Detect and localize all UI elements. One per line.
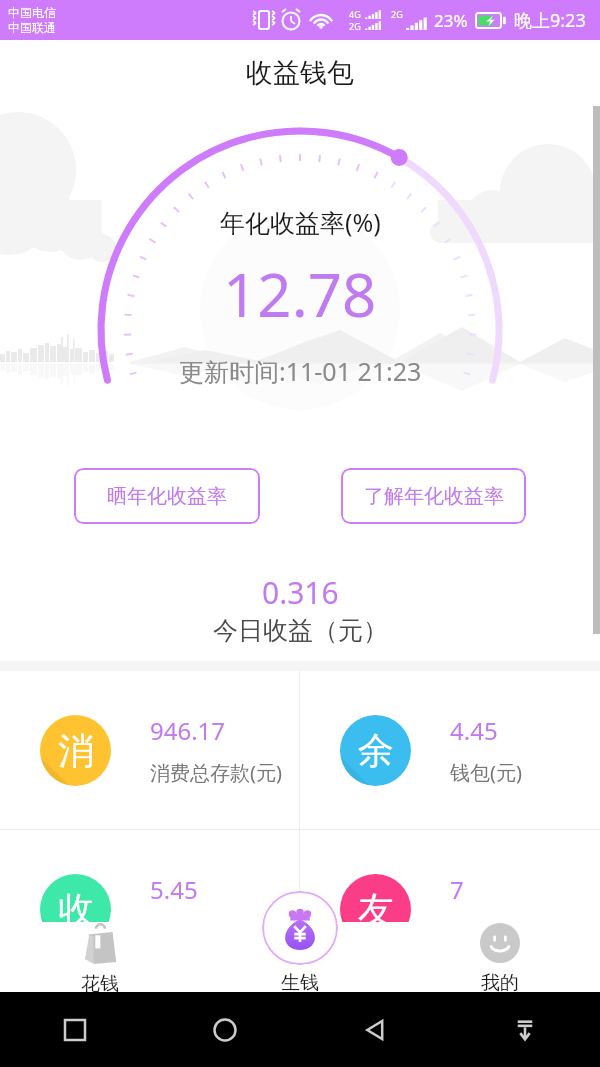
staticText: 我的 [481,971,519,995]
staticText: 晚上9:23 [514,8,586,33]
other: 花钱 [82,923,118,964]
staticText: 消费总存款(元) [150,759,282,786]
staticText: 中国电信 [8,5,56,20]
staticText: 7 [450,873,464,906]
staticText: 更新时间:11-01 21:23 [179,354,422,388]
staticText: 晒年化收益率 [107,484,227,509]
staticText: 好友(人) [450,918,522,945]
staticText: 中国联通 [8,20,56,35]
button[interactable]: 生钱 [200,922,400,996]
button[interactable]: 我的 [400,922,600,996]
staticText: 12.78 [223,253,377,335]
button[interactable]: 了解年化收益率 [341,468,526,524]
staticText: 花钱 [81,972,119,996]
staticText: 钱包(元) [450,759,522,786]
other: 我的 [480,923,520,963]
staticText: 年化收益率(%) [220,205,381,239]
staticText: 946.17 [150,714,226,747]
staticText: 收 [58,887,94,932]
staticText: 生钱 [281,971,319,995]
button[interactable]: Hide navigation bar [450,992,600,1067]
staticText: 23% [434,9,468,32]
button[interactable]: Back [300,992,450,1067]
staticText: 5.45 [150,873,198,906]
staticText: 4.45 [450,714,498,747]
staticText: 消 [58,728,94,773]
button[interactable]: 收 [0,830,299,988]
button[interactable]: Recents [0,992,150,1067]
staticText: 2G [349,20,361,32]
staticText: 0.316 [262,572,339,613]
other: 生钱 [278,906,322,950]
staticText: 余 [358,728,394,773]
button[interactable]: 晒年化收益率 [74,468,260,524]
staticText: 了解年化收益率 [364,484,504,509]
button[interactable]: 消 [0,671,299,829]
staticText: 友 [358,887,394,932]
button[interactable]: Home [150,992,300,1067]
staticText: 今日收益（元） [213,615,388,646]
button[interactable]: 花钱 [0,922,200,996]
staticText: 2G [391,8,403,20]
staticText: 收益钱包 [246,56,354,90]
button[interactable]: 友 [300,830,600,988]
button[interactable]: 余 [300,671,600,829]
staticText: 4G [349,8,361,20]
button[interactable]: 生钱 [262,891,338,965]
